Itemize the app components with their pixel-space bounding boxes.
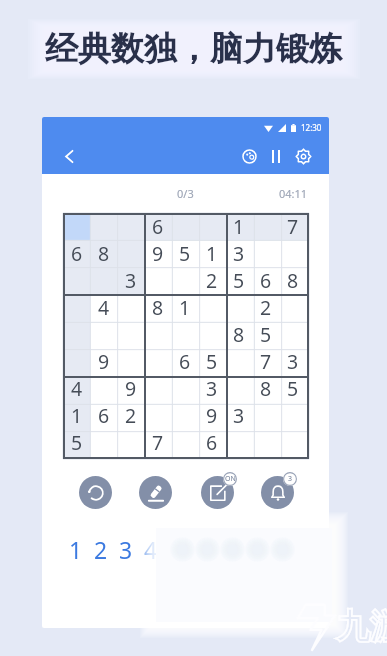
button[interactable]: Erase bbox=[139, 476, 172, 509]
button[interactable]: 1 bbox=[68, 534, 83, 562]
button[interactable] bbox=[90, 213, 117, 240]
button[interactable] bbox=[198, 321, 225, 348]
button[interactable] bbox=[144, 402, 171, 429]
button[interactable]: 5 bbox=[168, 534, 183, 562]
button[interactable] bbox=[63, 321, 90, 348]
button[interactable] bbox=[63, 294, 90, 321]
button[interactable]: Notes bbox=[201, 476, 234, 509]
button[interactable]: Hint bbox=[261, 476, 294, 509]
button[interactable]: Undo bbox=[79, 476, 112, 509]
button[interactable] bbox=[279, 240, 306, 267]
button[interactable]: 2 bbox=[252, 294, 279, 321]
button[interactable]: 5 bbox=[225, 267, 252, 294]
button[interactable] bbox=[279, 321, 306, 348]
button[interactable] bbox=[252, 429, 279, 456]
button[interactable]: 9 bbox=[144, 240, 171, 267]
button[interactable]: 5 bbox=[171, 240, 198, 267]
button[interactable] bbox=[90, 375, 117, 402]
button[interactable]: 3 bbox=[225, 240, 252, 267]
button[interactable]: 5 bbox=[252, 321, 279, 348]
button[interactable] bbox=[279, 429, 306, 456]
button[interactable] bbox=[171, 402, 198, 429]
button[interactable] bbox=[63, 267, 90, 294]
button[interactable]: Theme bbox=[238, 145, 260, 167]
button[interactable] bbox=[198, 213, 225, 240]
button[interactable] bbox=[171, 213, 198, 240]
button[interactable] bbox=[144, 267, 171, 294]
button[interactable]: 6 bbox=[171, 348, 198, 375]
button[interactable] bbox=[117, 294, 144, 321]
button[interactable] bbox=[252, 240, 279, 267]
button[interactable]: 2 bbox=[93, 534, 108, 562]
button[interactable] bbox=[63, 213, 90, 240]
button[interactable]: 8 bbox=[252, 375, 279, 402]
button[interactable] bbox=[90, 429, 117, 456]
button[interactable]: 3 bbox=[117, 267, 144, 294]
button[interactable]: 6 bbox=[252, 267, 279, 294]
button[interactable] bbox=[252, 213, 279, 240]
button[interactable]: 1 bbox=[63, 402, 90, 429]
button[interactable] bbox=[117, 429, 144, 456]
button[interactable] bbox=[90, 321, 117, 348]
button[interactable] bbox=[117, 321, 144, 348]
button[interactable] bbox=[171, 429, 198, 456]
button[interactable]: Settings bbox=[292, 145, 314, 167]
button[interactable]: Back bbox=[56, 143, 82, 169]
button[interactable]: 8 bbox=[225, 321, 252, 348]
button[interactable] bbox=[171, 375, 198, 402]
button[interactable]: 9 bbox=[117, 375, 144, 402]
button[interactable]: 3 bbox=[225, 402, 252, 429]
button[interactable]: 8 bbox=[90, 240, 117, 267]
button[interactable] bbox=[198, 294, 225, 321]
button[interactable]: 7 bbox=[144, 429, 171, 456]
staticText: 9 bbox=[125, 375, 137, 402]
button[interactable] bbox=[225, 294, 252, 321]
button[interactable]: 5 bbox=[279, 375, 306, 402]
button[interactable]: 9 bbox=[268, 534, 283, 562]
button[interactable]: 1 bbox=[225, 213, 252, 240]
staticText: 1 bbox=[233, 213, 245, 240]
button[interactable] bbox=[171, 267, 198, 294]
button[interactable] bbox=[117, 348, 144, 375]
button[interactable]: 6 bbox=[63, 240, 90, 267]
button[interactable]: 4 bbox=[90, 294, 117, 321]
button[interactable] bbox=[279, 402, 306, 429]
button[interactable]: 6 bbox=[90, 402, 117, 429]
button[interactable]: 5 bbox=[63, 429, 90, 456]
button[interactable]: 2 bbox=[198, 267, 225, 294]
button[interactable]: 5 bbox=[198, 348, 225, 375]
button[interactable] bbox=[171, 321, 198, 348]
button[interactable]: 6 bbox=[198, 429, 225, 456]
button[interactable] bbox=[117, 213, 144, 240]
button[interactable]: 4 bbox=[143, 534, 158, 562]
button[interactable] bbox=[225, 348, 252, 375]
button[interactable]: 9 bbox=[198, 402, 225, 429]
button[interactable]: 8 bbox=[243, 534, 258, 562]
button[interactable]: 6 bbox=[193, 534, 208, 562]
button[interactable]: 1 bbox=[171, 294, 198, 321]
button[interactable]: 3 bbox=[198, 375, 225, 402]
button[interactable] bbox=[252, 402, 279, 429]
button[interactable]: 1 bbox=[198, 240, 225, 267]
button[interactable]: 3 bbox=[118, 534, 133, 562]
button[interactable]: 7 bbox=[252, 348, 279, 375]
button[interactable]: 8 bbox=[279, 267, 306, 294]
button[interactable]: 9 bbox=[90, 348, 117, 375]
button[interactable] bbox=[144, 375, 171, 402]
button[interactable]: 6 bbox=[144, 213, 171, 240]
button[interactable] bbox=[279, 294, 306, 321]
button[interactable] bbox=[63, 348, 90, 375]
button[interactable] bbox=[144, 321, 171, 348]
button[interactable]: 3 bbox=[279, 348, 306, 375]
button[interactable]: 2 bbox=[117, 402, 144, 429]
button[interactable] bbox=[225, 375, 252, 402]
button[interactable]: Pause bbox=[265, 145, 287, 167]
button[interactable]: 7 bbox=[279, 213, 306, 240]
button[interactable] bbox=[225, 429, 252, 456]
button[interactable]: 8 bbox=[144, 294, 171, 321]
button[interactable]: 7 bbox=[218, 534, 233, 562]
button[interactable]: 4 bbox=[63, 375, 90, 402]
button[interactable] bbox=[144, 348, 171, 375]
